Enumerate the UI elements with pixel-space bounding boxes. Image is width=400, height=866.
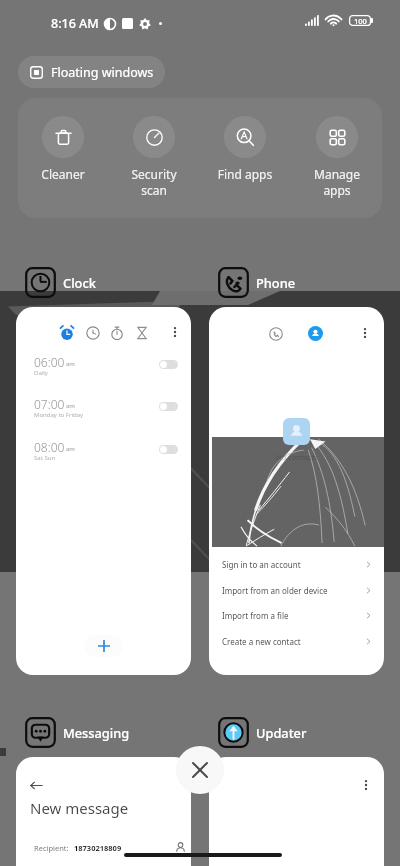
button[interactable]: More options (168, 325, 182, 339)
staticText: Clock (63, 274, 96, 291)
staticText: Sat Sun (34, 454, 56, 462)
button[interactable]: Recents (269, 327, 283, 341)
staticText: am (66, 360, 75, 368)
button[interactable]: Floating windows (18, 56, 165, 88)
staticText: Messaging (63, 724, 130, 741)
staticText: am (66, 445, 75, 453)
button[interactable]: Close all apps (176, 746, 224, 794)
staticText: Daily (34, 369, 48, 377)
staticText: No contacts (276, 452, 318, 462)
button[interactable]: Back (30, 779, 43, 792)
button[interactable]: Create a new contact (209, 628, 384, 654)
staticText: Create a new contact (222, 636, 301, 647)
button[interactable]: Cleaner (19, 98, 107, 182)
button[interactable]: Back (16, 757, 191, 866)
button[interactable]: Clock (25, 267, 96, 298)
staticText: 07:00 (34, 396, 65, 412)
staticText: Import from an older device (222, 585, 328, 596)
staticText: am (66, 402, 75, 410)
staticText: New message (30, 798, 129, 818)
staticText: Recipient: (34, 843, 69, 853)
staticText: 18730218809 (74, 843, 122, 853)
button[interactable]: Import from a file (209, 602, 384, 628)
button[interactable]: 07:00 (16, 396, 191, 426)
button[interactable]: Updater (218, 717, 307, 748)
button[interactable]: Find apps (201, 98, 289, 182)
staticText: Cleaner (19, 166, 107, 182)
staticText: Monday to Friday (34, 411, 84, 419)
button[interactable]: 08:00 (16, 439, 191, 469)
button[interactable]: Stopwatch (110, 326, 124, 340)
button[interactable]: Manage apps (293, 98, 381, 198)
button[interactable]: Alarm (16, 307, 191, 675)
button[interactable]: Messaging (25, 717, 130, 748)
staticText: Sign in to an account (222, 559, 301, 570)
button[interactable]: Alarm (59, 325, 75, 341)
staticText: Updater (256, 724, 307, 741)
staticText: Manage apps (293, 166, 381, 198)
staticText: Find apps (201, 166, 289, 182)
button[interactable]: Sign in to an account (209, 551, 384, 577)
staticText: Import from a file (222, 610, 289, 621)
staticText: 06:00 (34, 354, 65, 370)
button[interactable]: Recents (209, 307, 384, 675)
button[interactable]: Toggle alarm (159, 445, 178, 454)
staticText: 100 (354, 16, 367, 26)
staticText: Phone (256, 274, 296, 291)
staticText: 08:00 (34, 439, 65, 455)
button[interactable]: Timer (135, 326, 149, 340)
button[interactable]: Toggle alarm (159, 402, 178, 411)
staticText: 8:16 AM (51, 15, 99, 32)
staticText: Floating windows (51, 64, 154, 81)
button[interactable]: Import from an older device (209, 577, 384, 603)
button[interactable]: More options (358, 326, 372, 340)
button[interactable]: More options (209, 757, 384, 866)
button[interactable]: Phone (218, 267, 296, 298)
button[interactable]: World clock (86, 326, 100, 340)
staticText: Security scan (110, 166, 198, 198)
button[interactable]: More options (359, 778, 373, 792)
button[interactable]: 06:00 (16, 354, 191, 384)
button[interactable]: Toggle alarm (159, 360, 178, 369)
button[interactable]: Add alarm (84, 635, 123, 657)
button[interactable]: Security scan (110, 98, 198, 198)
button[interactable]: Contacts (308, 326, 323, 341)
